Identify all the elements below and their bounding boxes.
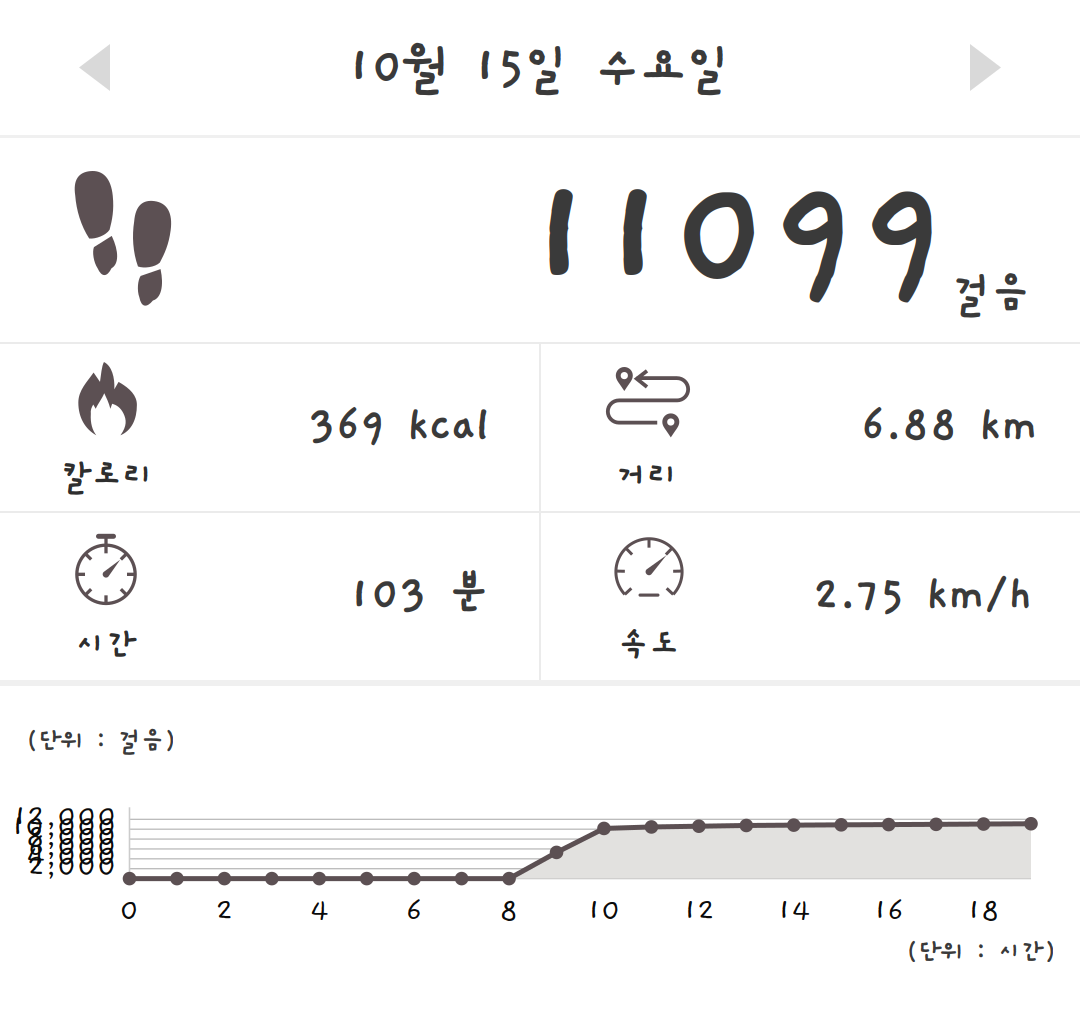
staticText: 6: [406, 894, 423, 928]
staticText: 12: [683, 894, 715, 928]
staticText: 10월 15일 수요일: [347, 39, 732, 95]
staticText: 11099: [524, 151, 949, 325]
staticText: 시간: [75, 626, 137, 664]
staticText: 4,000: [26, 839, 117, 874]
staticText: 369 kcal: [309, 401, 490, 451]
staticText: 6,000: [28, 830, 117, 864]
staticText: 걸음: [952, 270, 1030, 318]
staticText: 8: [500, 894, 519, 928]
staticText: 0: [119, 894, 139, 928]
staticText: 18: [967, 894, 1000, 928]
button[interactable]: 다음 날: [926, 8, 1044, 126]
staticText: 16: [873, 894, 904, 928]
button[interactable]: 거리: [541, 344, 1080, 511]
staticText: 2.75 km/h: [813, 570, 1033, 620]
button[interactable]: 이전 날: [35, 8, 153, 126]
button[interactable]: 시간: [0, 513, 539, 680]
staticText: 10,000: [11, 810, 117, 844]
staticText: 103 분: [349, 570, 490, 620]
staticText: 4: [310, 894, 329, 928]
staticText: 거리: [616, 457, 678, 495]
button[interactable]: 속도: [541, 513, 1080, 680]
staticText: 2: [215, 894, 233, 928]
staticText: (단위 : 걸음): [26, 727, 176, 755]
staticText: 10: [587, 894, 621, 928]
staticText: 속도: [618, 626, 680, 664]
staticText: 2,000: [27, 849, 117, 884]
staticText: (단위 : 시간): [906, 938, 1056, 966]
staticText: 14: [777, 894, 810, 928]
staticText: 12,000: [13, 800, 117, 835]
button[interactable]: 11099: [0, 138, 1080, 342]
staticText: 칼로리: [60, 457, 153, 495]
staticText: 6.88 km: [861, 401, 1038, 451]
staticText: 8,000: [26, 820, 117, 854]
button[interactable]: 칼로리: [0, 344, 539, 511]
